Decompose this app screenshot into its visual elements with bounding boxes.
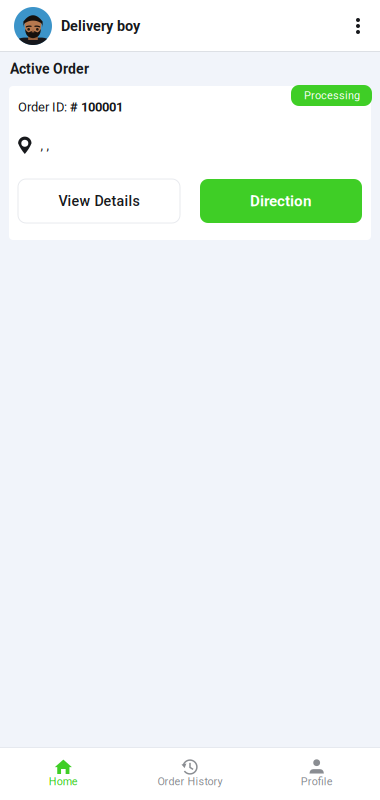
staticText: Home [49,775,78,788]
button[interactable]: Profile photo [14,7,52,45]
button[interactable]: Home [0,747,127,800]
button[interactable]: Direction [200,179,362,223]
staticText: , , [41,137,50,153]
staticText: Processing [304,89,360,102]
staticText: Order ID: [18,99,70,115]
button[interactable]: View Details [18,179,180,223]
staticText: Active Order [10,61,89,77]
button[interactable]: More options [347,13,369,39]
button[interactable]: Profile [253,747,380,800]
staticText: Direction [250,192,312,210]
button[interactable]: Order History [127,747,253,800]
staticText: View Details [58,193,139,209]
staticText: Order History [157,775,222,788]
staticText: Delivery boy [61,18,140,34]
staticText: Profile [301,775,333,788]
staticText: # 100001 [70,99,123,115]
